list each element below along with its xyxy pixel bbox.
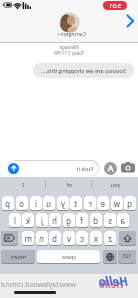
button[interactable]: m bbox=[22, 231, 34, 246]
staticText: j bbox=[40, 215, 43, 226]
button[interactable]: l bbox=[9, 213, 21, 228]
button[interactable]: s bbox=[104, 213, 116, 228]
button[interactable]: e bbox=[97, 196, 109, 211]
staticText: w bbox=[113, 198, 120, 209]
button[interactable]: I bbox=[0, 178, 46, 191]
staticText: l bbox=[13, 215, 16, 226]
staticText: b bbox=[52, 233, 57, 244]
staticText: of bbox=[66, 181, 72, 188]
button[interactable] bbox=[7, 160, 99, 176]
button[interactable]: space bbox=[37, 250, 100, 264]
button[interactable]: k bbox=[22, 213, 34, 228]
button[interactable]: y bbox=[57, 196, 69, 211]
button[interactable]: n bbox=[36, 231, 48, 246]
staticText: o bbox=[19, 198, 24, 209]
button[interactable]: x bbox=[90, 231, 102, 246]
button[interactable]: 123 bbox=[118, 250, 136, 264]
staticText: e bbox=[100, 198, 105, 209]
staticText: 123 bbox=[122, 253, 131, 260]
button[interactable] bbox=[120, 162, 135, 173]
button[interactable]: Sooooo are we shopping this.... bbox=[33, 63, 134, 78]
button[interactable]: c bbox=[76, 231, 88, 246]
button[interactable]: u bbox=[43, 196, 55, 211]
staticText: q bbox=[127, 198, 132, 209]
staticText: Fuck it bbox=[76, 165, 93, 172]
staticText: Sooooo are we shopping this.... bbox=[40, 67, 126, 75]
button[interactable] bbox=[103, 250, 117, 264]
button[interactable]: z bbox=[104, 231, 116, 246]
staticText: 5:01 bbox=[109, 2, 121, 10]
button[interactable]: p bbox=[2, 196, 14, 211]
staticText: m bbox=[24, 233, 32, 244]
button[interactable]: v bbox=[63, 231, 75, 246]
staticText: d bbox=[93, 215, 98, 226]
staticText: z bbox=[108, 233, 112, 244]
button[interactable]: f bbox=[76, 213, 88, 228]
staticText: iMessage bbox=[59, 44, 79, 50]
button[interactable]: q bbox=[124, 196, 136, 211]
staticText: return bbox=[10, 253, 26, 260]
button[interactable] bbox=[104, 162, 117, 175]
button[interactable]: g bbox=[63, 213, 75, 228]
button[interactable]: a bbox=[117, 213, 129, 228]
staticText: h bbox=[52, 215, 57, 226]
staticText: www.taylawood.com/ut bbox=[0, 280, 76, 289]
button[interactable]: i bbox=[30, 196, 42, 211]
staticText: Hello bbox=[98, 273, 128, 289]
staticText: i bbox=[34, 198, 37, 209]
button[interactable]: j bbox=[36, 213, 48, 228]
button[interactable] bbox=[119, 231, 136, 246]
staticText: v bbox=[66, 233, 71, 244]
staticText: a bbox=[120, 215, 125, 226]
staticText: k bbox=[25, 215, 30, 226]
button[interactable]: of bbox=[46, 178, 92, 191]
staticText: Carrington › bbox=[57, 31, 86, 38]
staticText: n bbox=[39, 233, 44, 244]
staticText: p bbox=[5, 198, 10, 209]
staticText: c bbox=[80, 233, 84, 244]
staticText: f bbox=[80, 215, 83, 226]
staticText: Today 7:17 PM bbox=[54, 50, 84, 56]
staticText: g bbox=[66, 215, 71, 226]
staticText: space bbox=[61, 253, 76, 260]
button[interactable]: t bbox=[70, 196, 82, 211]
button[interactable]: r bbox=[84, 196, 96, 211]
button[interactable] bbox=[8, 163, 19, 174]
button[interactable]: 5:01 bbox=[103, 1, 127, 10]
button[interactable]: w bbox=[111, 196, 123, 211]
staticText: you bbox=[110, 181, 120, 188]
staticText: u bbox=[46, 198, 51, 209]
button[interactable] bbox=[1, 231, 18, 246]
button[interactable]: b bbox=[49, 231, 61, 246]
staticText: r bbox=[88, 198, 92, 209]
button[interactable]: return bbox=[1, 250, 35, 264]
staticText: Hello bbox=[98, 277, 123, 291]
staticText: y bbox=[60, 198, 65, 209]
staticText: s bbox=[108, 215, 112, 226]
button[interactable]: d bbox=[90, 213, 102, 228]
staticText: t bbox=[74, 198, 77, 209]
button[interactable]: you bbox=[92, 178, 138, 191]
button[interactable] bbox=[125, 14, 135, 28]
button[interactable] bbox=[59, 12, 80, 33]
staticText: x bbox=[93, 233, 98, 244]
staticText: I bbox=[22, 181, 24, 188]
button[interactable]: o bbox=[16, 196, 28, 211]
button[interactable]: h bbox=[49, 213, 61, 228]
